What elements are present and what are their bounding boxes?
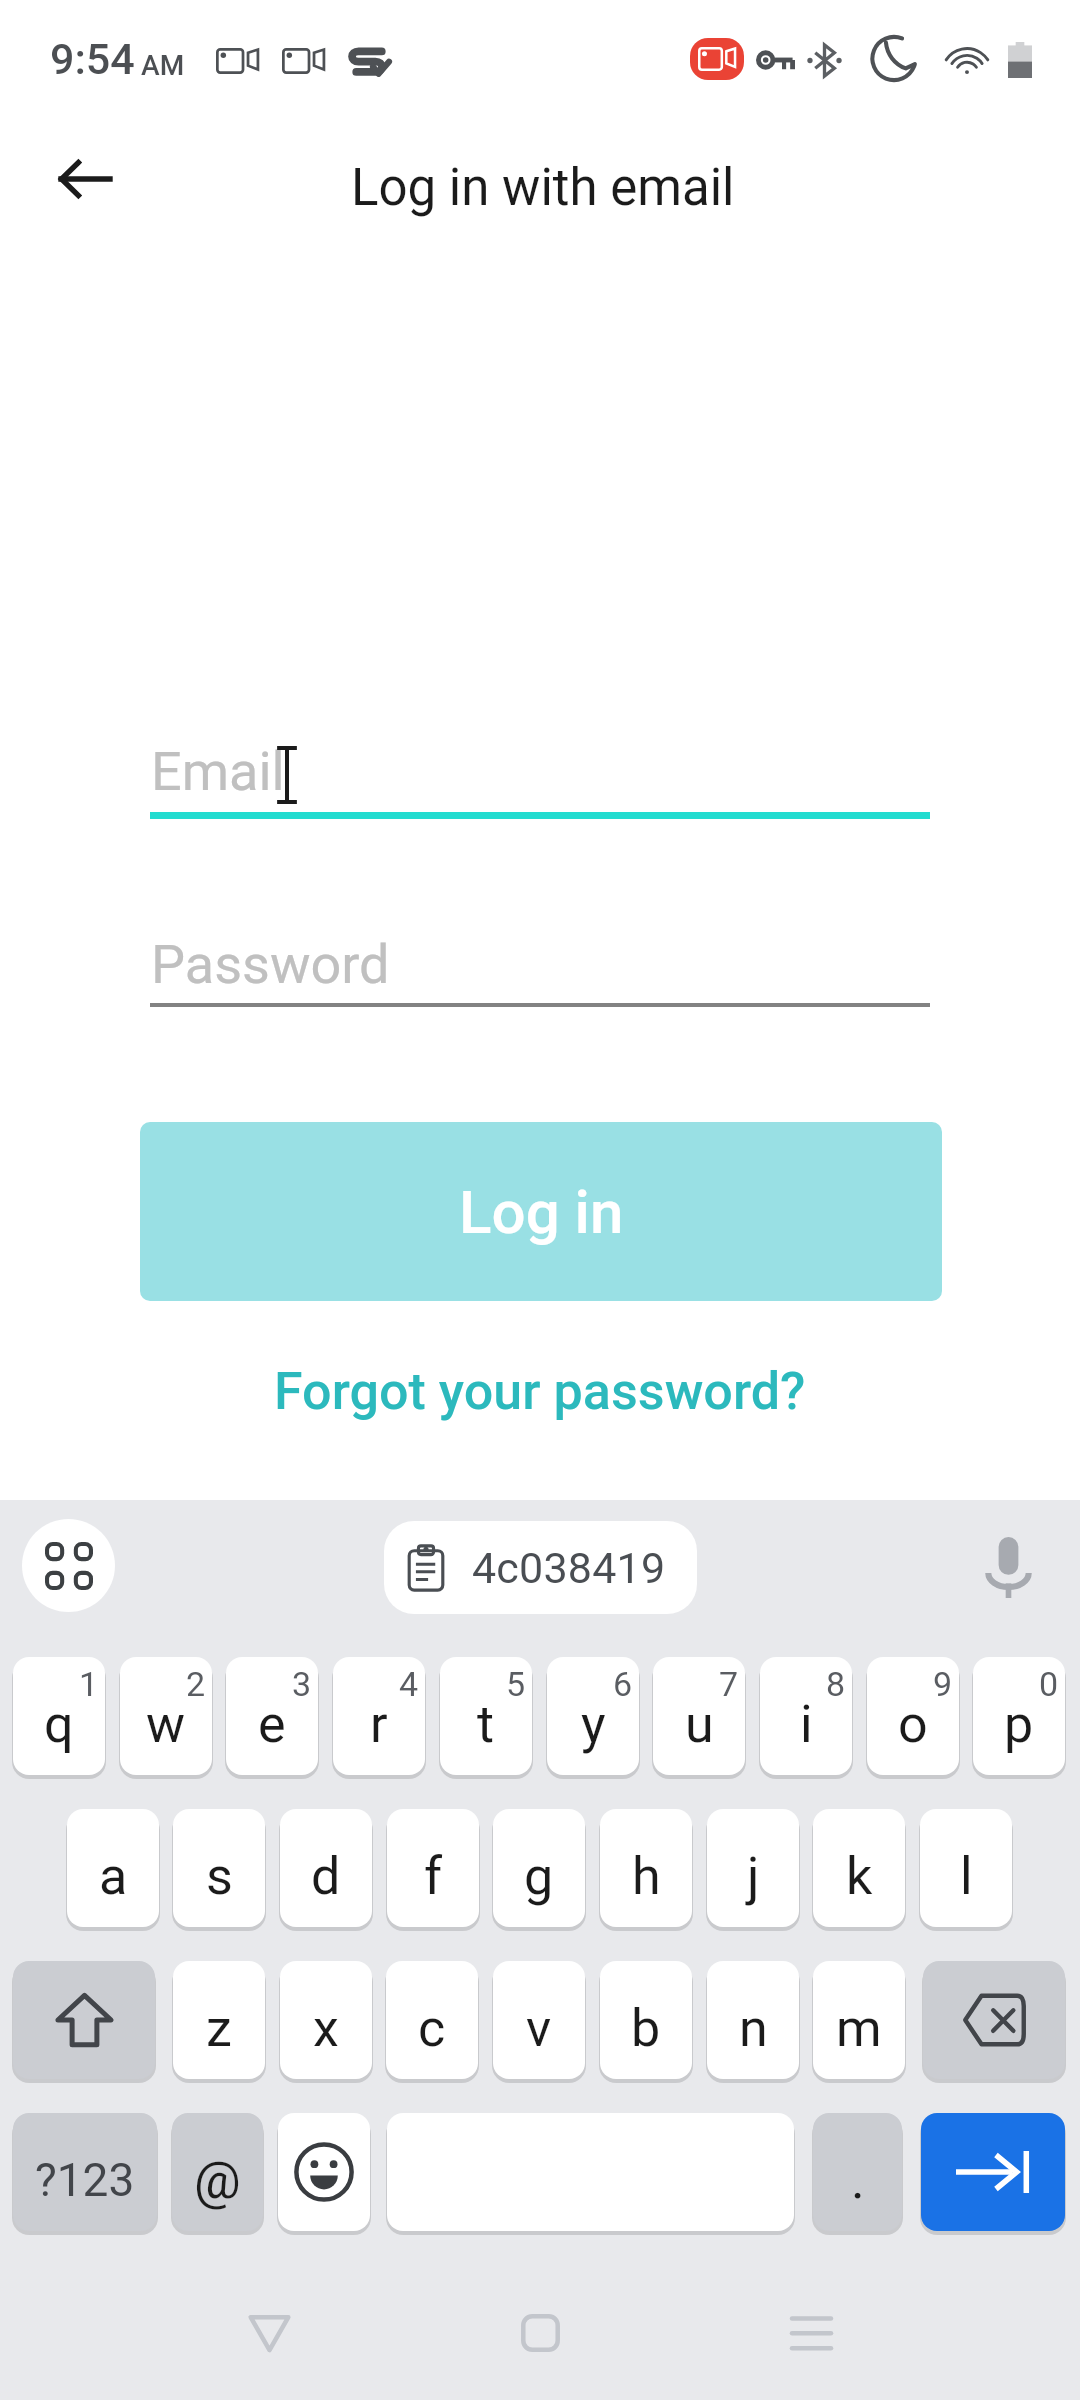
button[interactable]: m (813, 1961, 905, 2079)
button[interactable]: i (760, 1657, 852, 1775)
button[interactable]: Back (214, 2278, 324, 2388)
staticText: Forgot your password? (274, 1361, 806, 1422)
staticText: . (851, 2150, 865, 2211)
staticText: 4c038419 (472, 1543, 666, 1593)
staticText: r (370, 1694, 388, 1755)
staticText: o (898, 1694, 928, 1755)
staticText: 8 (826, 1664, 846, 1704)
staticText: 0 (1039, 1664, 1059, 1704)
button[interactable]: s (173, 1809, 265, 1927)
button[interactable]: y (547, 1657, 639, 1775)
staticText: u (685, 1694, 714, 1755)
staticText: y (581, 1694, 606, 1755)
staticText: d (311, 1846, 341, 1907)
button[interactable]: Keyboard tools (22, 1519, 115, 1612)
staticText: h (632, 1846, 661, 1907)
button[interactable]: q (13, 1657, 105, 1775)
button[interactable]: j (707, 1809, 799, 1927)
button[interactable]: d (280, 1809, 372, 1927)
staticText: a (99, 1846, 128, 1907)
staticText: v (526, 1998, 552, 2059)
staticText: AM (141, 49, 185, 82)
staticText: 5 (506, 1664, 526, 1704)
staticText: Email (151, 740, 285, 803)
button[interactable]: Voice input (968, 1527, 1048, 1607)
staticText: t (477, 1694, 495, 1755)
staticText: 3 (292, 1664, 312, 1704)
staticText: s (206, 1846, 233, 1907)
button[interactable]: Emoji (278, 2113, 370, 2231)
staticText: 2 (186, 1664, 206, 1704)
staticText: 9 (933, 1664, 953, 1704)
button[interactable]: Shift (13, 1961, 155, 2079)
button[interactable]: Home (485, 2278, 595, 2388)
button[interactable]: 4c038419 (384, 1521, 697, 1614)
staticText: q (44, 1694, 74, 1755)
button[interactable]: ?123 (13, 2113, 157, 2231)
button[interactable]: Back (28, 123, 140, 235)
staticText: Log in with email (351, 158, 735, 218)
button[interactable]: c (386, 1961, 478, 2079)
button[interactable]: v (493, 1961, 585, 2079)
staticText: g (524, 1846, 554, 1907)
button[interactable]: e (226, 1657, 318, 1775)
button[interactable]: @ (172, 2113, 263, 2231)
button[interactable]: Recents (756, 2278, 866, 2388)
button[interactable]: Backspace (923, 1961, 1065, 2079)
staticText: n (739, 1998, 768, 2059)
button[interactable]: t (440, 1657, 532, 1775)
staticText: j (747, 1846, 760, 1907)
staticText: p (1004, 1694, 1034, 1755)
button[interactable]: g (493, 1809, 585, 1927)
button[interactable]: l (920, 1809, 1012, 1927)
button[interactable]: x (280, 1961, 372, 2079)
staticText: x (313, 1998, 339, 2059)
staticText: e (258, 1694, 286, 1755)
staticText: b (631, 1998, 661, 2059)
button[interactable]: p (973, 1657, 1065, 1775)
staticText: f (424, 1846, 443, 1907)
staticText: Log in (459, 1177, 624, 1247)
button[interactable]: . (813, 2113, 902, 2231)
staticText: z (206, 1998, 232, 2059)
staticText: 4 (399, 1664, 419, 1704)
button[interactable]: u (653, 1657, 745, 1775)
staticText: 1 (79, 1664, 99, 1704)
button[interactable]: h (600, 1809, 692, 1927)
button[interactable]: Log in (140, 1122, 942, 1301)
staticText: ?123 (35, 2153, 135, 2207)
staticText: i (800, 1694, 813, 1755)
button[interactable]: a (67, 1809, 159, 1927)
staticText: 9:54 (50, 34, 135, 84)
button[interactable]: b (600, 1961, 692, 2079)
staticText: 7 (719, 1664, 739, 1704)
staticText: m (836, 1998, 882, 2059)
staticText: k (846, 1846, 873, 1907)
button[interactable]: w (120, 1657, 212, 1775)
button[interactable]: k (813, 1809, 905, 1927)
button[interactable]: Next (921, 2113, 1065, 2231)
staticText: l (960, 1846, 973, 1907)
button[interactable]: n (707, 1961, 799, 2079)
button[interactable]: o (867, 1657, 959, 1775)
button[interactable]: z (173, 1961, 265, 2079)
button[interactable]: r (333, 1657, 425, 1775)
staticText: w (146, 1694, 186, 1755)
staticText: c (418, 1998, 446, 2059)
button[interactable]: f (387, 1809, 479, 1927)
staticText: 6 (613, 1664, 633, 1704)
staticText: @ (194, 2150, 241, 2211)
staticText: Password (151, 933, 390, 996)
button[interactable]: Forgot your password? (250, 1349, 830, 1434)
